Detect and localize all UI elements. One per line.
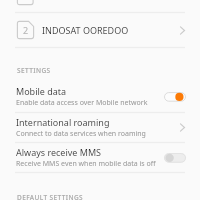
- staticText: Connect to data services when roaming: [16, 129, 146, 139]
- staticText: SETTINGS: [17, 66, 51, 75]
- staticText: Mobile data: [16, 85, 67, 97]
- other: Open: [180, 123, 185, 132]
- button[interactable]: International roaming: [0, 113, 200, 142]
- staticText: International roaming: [16, 116, 110, 128]
- staticText: 2: [23, 24, 29, 36]
- button[interactable]: Always receive MMS: [0, 143, 200, 172]
- staticText: Always receive MMS: [16, 146, 102, 158]
- button[interactable]: 2: [0, 13, 200, 47]
- staticText: INDOSAT OOREDOO: [42, 24, 129, 36]
- button[interactable]: Toggle off: [164, 152, 186, 163]
- other: Open: [180, 26, 185, 35]
- button[interactable]: Mobile data: [0, 81, 200, 112]
- staticText: Enable data access over Mobile network: [16, 98, 148, 108]
- staticText: DEFAULT SETTINGS: [17, 193, 84, 200]
- staticText: Receive MMS even when mobile data is off: [16, 159, 156, 169]
- button[interactable]: Toggle on: [164, 91, 186, 102]
